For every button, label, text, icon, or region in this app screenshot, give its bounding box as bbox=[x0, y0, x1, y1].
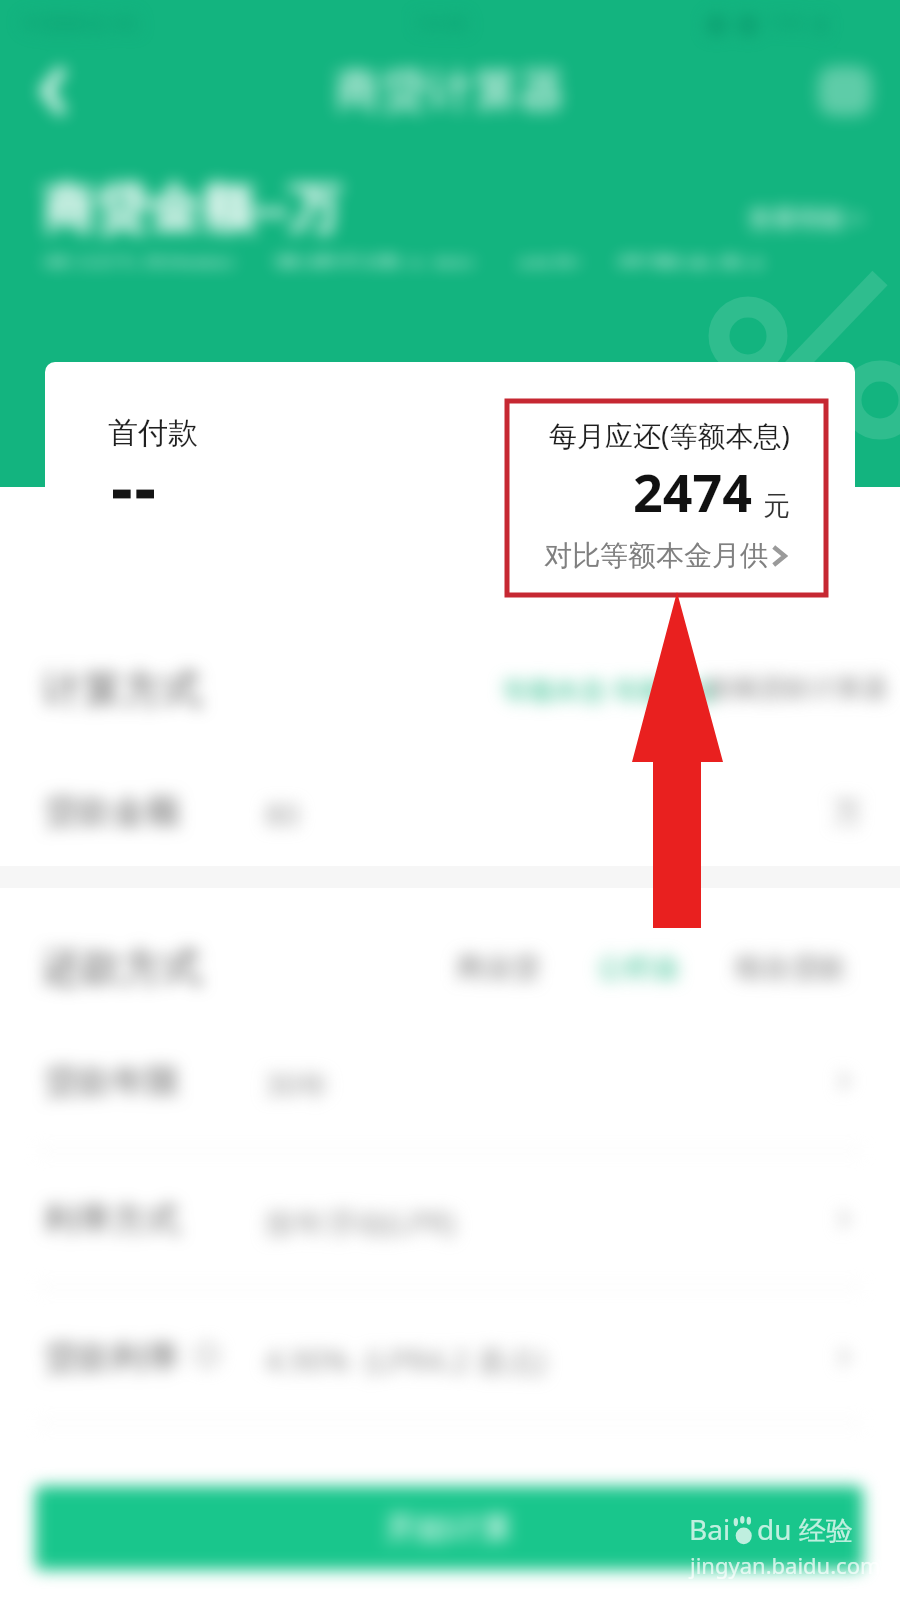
staticText: 贷款年限 bbox=[44, 1060, 180, 1103]
staticText: 商贷计算器 bbox=[335, 62, 565, 120]
button[interactable]: Menu bbox=[818, 66, 872, 116]
staticText: 计算方式 bbox=[42, 664, 202, 714]
staticText: 贷款利率 bbox=[44, 1336, 180, 1379]
staticText: 对比等额本金月供 bbox=[544, 538, 768, 573]
button[interactable]: 对比等额本金月供 bbox=[544, 538, 790, 573]
staticText: 30年 bbox=[265, 1064, 330, 1105]
button[interactable]: 查看明细 > bbox=[748, 201, 864, 234]
staticText: 等额本息·等额本金 bbox=[502, 672, 717, 708]
staticText: 按年浮动(LPR) bbox=[265, 1202, 456, 1243]
staticText: 商业贷 bbox=[456, 950, 540, 985]
staticText: 开始计算 bbox=[385, 1508, 513, 1548]
staticText: 公积金 bbox=[597, 950, 681, 985]
button[interactable]: 还款方式 bbox=[0, 928, 900, 1000]
button[interactable]: Back bbox=[24, 61, 84, 121]
staticText: 还款方式 bbox=[42, 942, 202, 992]
staticText: 经验 bbox=[792, 1511, 854, 1548]
button[interactable]: 利率方式 bbox=[0, 1190, 900, 1256]
staticText: du bbox=[757, 1510, 792, 1548]
staticText: 利率方式 bbox=[44, 1198, 180, 1241]
button[interactable]: 贷款利率 bbox=[0, 1328, 900, 1394]
button[interactable]: 开始计算 bbox=[35, 1486, 863, 1570]
staticText: 商贷金额--万 bbox=[42, 170, 341, 242]
staticText: 元 bbox=[763, 489, 790, 523]
button[interactable]: 计算方式 bbox=[0, 650, 900, 722]
staticText: 80 bbox=[265, 794, 300, 835]
staticText: jingyan.baidu.com bbox=[690, 1550, 881, 1580]
staticText: 每月应还(等额本息) bbox=[549, 416, 790, 454]
button[interactable]: 贷款年限 bbox=[0, 1052, 900, 1118]
button[interactable]: 贷款金额 bbox=[0, 782, 900, 848]
staticText: 2474 bbox=[633, 456, 752, 527]
staticText: 万 bbox=[832, 794, 862, 832]
staticText: 4.90% (LPR4.2 基点) bbox=[265, 1340, 546, 1381]
staticText: 首付款 bbox=[108, 414, 198, 452]
staticText: 首付比例30%、商贷利率4.9%、40年、等额本息1 bbox=[42, 248, 768, 266]
staticText: Bai bbox=[689, 1510, 731, 1548]
staticText: 组合贷款 bbox=[735, 950, 847, 985]
staticText: 按揭贷款计算器 bbox=[706, 672, 888, 705]
staticText: 贷款金额 bbox=[44, 790, 180, 833]
